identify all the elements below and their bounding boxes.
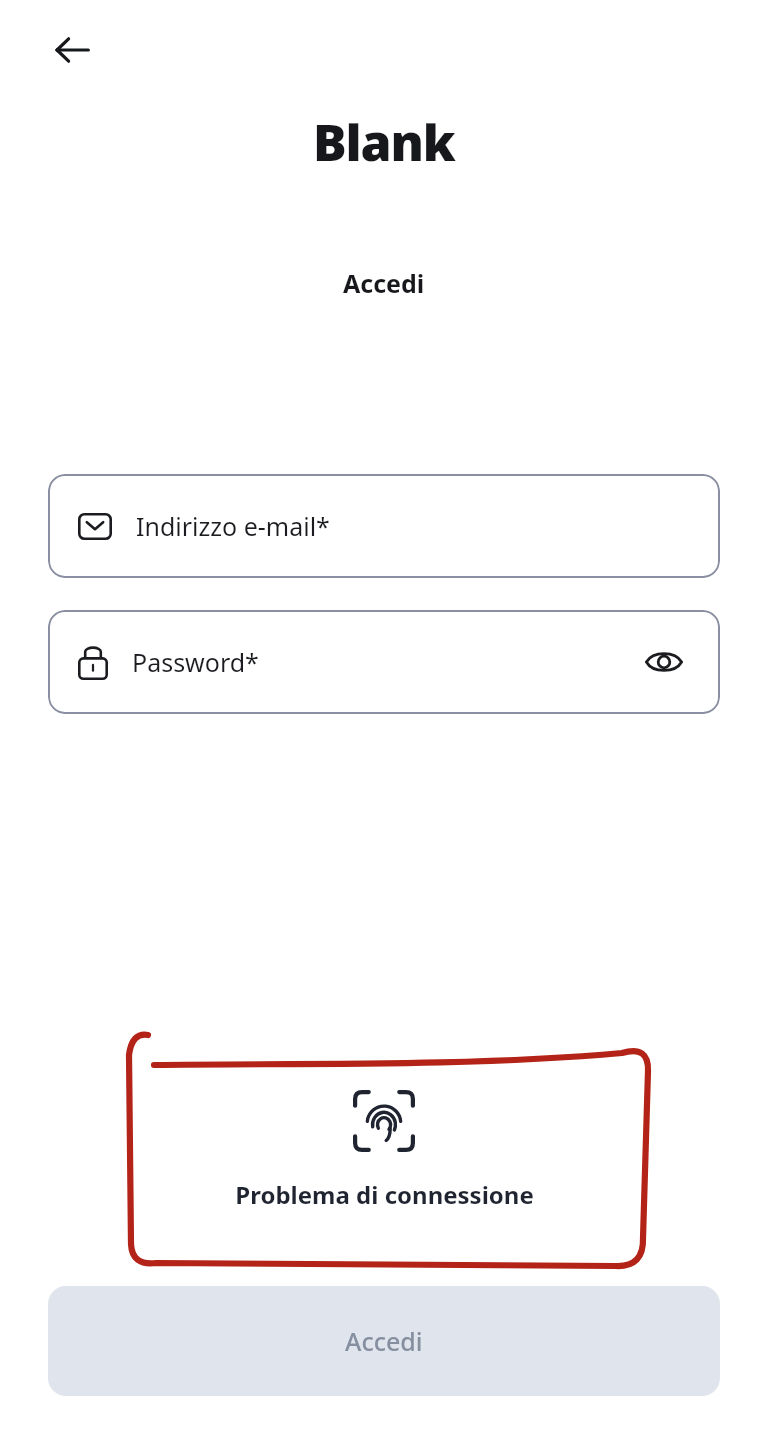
button[interactable]: Password* xyxy=(48,610,720,714)
staticText: Password* xyxy=(132,645,259,679)
staticText: Accedi xyxy=(345,1324,423,1358)
button[interactable]: Accedi xyxy=(48,1286,720,1396)
button[interactable]: Problema di connessione xyxy=(0,1090,768,1211)
button[interactable]: Show password xyxy=(638,636,690,688)
staticText: Blank xyxy=(313,108,455,176)
staticText: Indirizzo e-mail* xyxy=(136,509,330,543)
staticText: Accedi xyxy=(343,266,425,300)
button[interactable]: Back xyxy=(40,18,104,82)
button[interactable]: Indirizzo e-mail* xyxy=(48,474,720,578)
staticText: Problema di connessione xyxy=(235,1178,534,1211)
